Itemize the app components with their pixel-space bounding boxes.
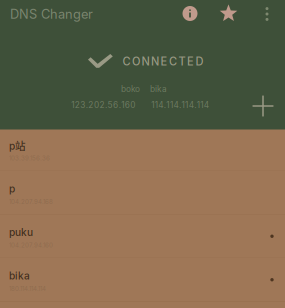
staticText: puku xyxy=(9,226,33,238)
staticText: CONNECTED xyxy=(122,55,203,68)
staticText: 123.202.56.160 114.114.114.114 xyxy=(71,100,209,110)
button[interactable]: bika xyxy=(0,258,285,302)
button[interactable]: More options xyxy=(258,5,276,23)
staticText: 180.114.114.114 xyxy=(9,285,46,292)
staticText: 104.207.94.168 xyxy=(9,198,53,205)
button[interactable]: DNS Changer xyxy=(10,2,100,26)
staticText: boko bika xyxy=(121,84,167,94)
button[interactable]: p xyxy=(0,171,285,215)
staticText: p xyxy=(9,183,15,195)
staticText: DNS Changer xyxy=(10,6,93,22)
button[interactable]: Add DNS server xyxy=(248,91,278,121)
button[interactable]: Info xyxy=(180,3,200,23)
button[interactable]: Favorite xyxy=(219,4,237,23)
button[interactable]: p站 xyxy=(0,128,285,171)
staticText: bika xyxy=(9,270,30,282)
staticText: 103.39.156.36 xyxy=(9,154,50,162)
button[interactable]: puku xyxy=(0,215,285,258)
staticText: p站 xyxy=(9,138,26,153)
staticText: 104.207.94.160 xyxy=(9,241,53,249)
